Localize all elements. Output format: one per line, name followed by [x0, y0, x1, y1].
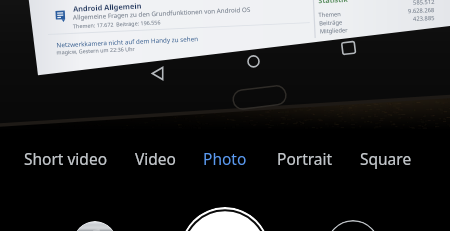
button[interactable]: Gallery	[73, 221, 117, 231]
button[interactable]: Video	[121, 145, 190, 172]
button[interactable]: Photo	[189, 145, 261, 172]
button[interactable]: Shutter	[180, 207, 270, 231]
button[interactable]: Square	[346, 145, 426, 172]
button[interactable]: Portrait	[263, 145, 347, 172]
staticText: Short video	[24, 148, 108, 169]
button[interactable]: Short video	[10, 145, 122, 172]
button[interactable]: Switch camera	[326, 220, 380, 231]
staticText: Square	[360, 148, 412, 169]
staticText: Video	[135, 148, 176, 169]
staticText: Portrait	[277, 148, 333, 169]
staticText: Photo	[203, 148, 247, 169]
